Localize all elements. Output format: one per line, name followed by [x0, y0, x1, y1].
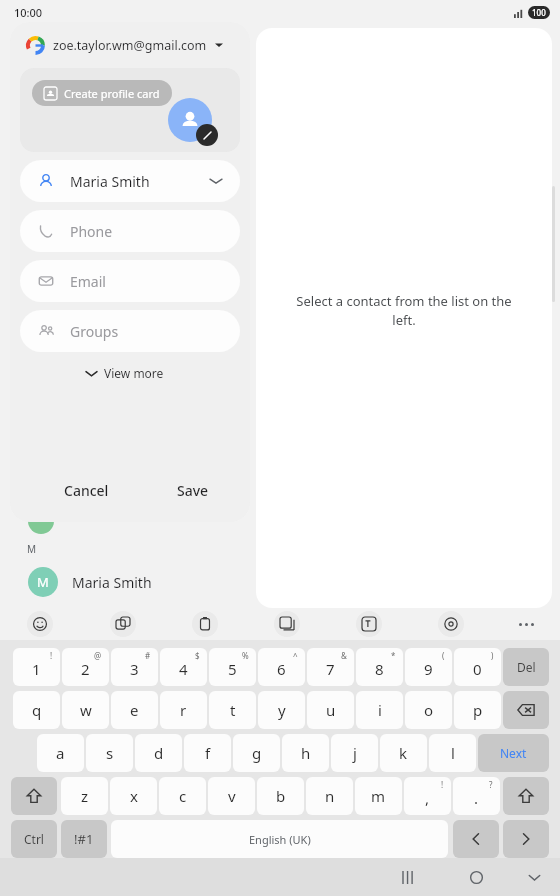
staticText: ,	[425, 788, 430, 808]
staticText: !	[50, 650, 53, 661]
button[interactable]: Handwriting	[356, 611, 382, 637]
staticText: *	[391, 650, 396, 661]
staticText: t	[230, 700, 236, 720]
button[interactable]: d	[135, 734, 182, 772]
button[interactable]: Groups	[20, 310, 240, 352]
button[interactable]: m	[355, 777, 402, 815]
staticText: 10:00	[14, 5, 43, 20]
button[interactable]: y	[258, 691, 305, 729]
staticText: $	[195, 650, 200, 661]
button[interactable]: 4	[160, 648, 207, 686]
button[interactable]: Next	[478, 734, 549, 772]
staticText: n	[325, 786, 335, 806]
button[interactable]: b	[257, 777, 304, 815]
button[interactable]: Phone	[20, 210, 240, 252]
button[interactable]: Shift	[11, 777, 57, 815]
button[interactable]: Translate	[110, 611, 136, 637]
staticText: Email	[70, 272, 106, 291]
staticText: f	[205, 743, 211, 763]
button[interactable]: View more	[80, 358, 170, 388]
button[interactable]: s	[86, 734, 133, 772]
button[interactable]: 5	[209, 648, 256, 686]
staticText: u	[326, 700, 336, 720]
button[interactable]: Hide keyboard	[524, 867, 544, 887]
staticText: Ctrl	[24, 831, 44, 847]
button[interactable]: p	[454, 691, 501, 729]
staticText: M	[37, 573, 49, 591]
button[interactable]: j	[331, 734, 378, 772]
button[interactable]: English (UK)	[111, 820, 448, 858]
button[interactable]: r	[160, 691, 207, 729]
button[interactable]: f	[184, 734, 231, 772]
button[interactable]: Shift	[503, 777, 549, 815]
staticText: &	[341, 650, 347, 661]
button[interactable]: t	[209, 691, 256, 729]
button[interactable]: 3	[111, 648, 158, 686]
button[interactable]: 2	[62, 648, 109, 686]
button[interactable]: n	[306, 777, 353, 815]
staticText: !	[441, 779, 444, 790]
button[interactable]: a	[37, 734, 84, 772]
button[interactable]: Save	[165, 470, 221, 510]
staticText: z	[81, 786, 89, 806]
button[interactable]: Ctrl	[11, 820, 57, 858]
button[interactable]: Backspace	[503, 691, 549, 729]
button[interactable]: i	[356, 691, 403, 729]
button[interactable]: Email	[20, 260, 240, 302]
button[interactable]: Cancel	[52, 470, 121, 510]
button[interactable]: q	[13, 691, 60, 729]
button[interactable]: l	[429, 734, 476, 772]
staticText: 8	[375, 659, 384, 679]
button[interactable]: Settings	[438, 611, 464, 637]
staticText: c	[179, 786, 187, 806]
button[interactable]: Create profile card	[32, 80, 172, 106]
staticText: #	[145, 650, 151, 661]
staticText: Create profile card	[64, 86, 160, 101]
button[interactable]: M	[20, 564, 250, 600]
button[interactable]: 9	[405, 648, 452, 686]
button[interactable]: 8	[356, 648, 403, 686]
staticText: zoe.taylor.wm@gmail.com	[53, 37, 207, 54]
button[interactable]: Maria Smith	[20, 160, 240, 202]
button[interactable]: Emoji	[27, 611, 53, 637]
button[interactable]: .	[453, 777, 500, 815]
button[interactable]: Next	[503, 820, 549, 858]
button[interactable]: 6	[258, 648, 305, 686]
button[interactable]: Stickers	[274, 611, 300, 637]
staticText: )	[491, 650, 494, 661]
staticText: View more	[104, 365, 164, 381]
button[interactable]: More	[513, 611, 539, 637]
button[interactable]: Home	[466, 867, 486, 887]
staticText: m	[371, 786, 386, 806]
button[interactable]: Del	[503, 648, 549, 686]
button[interactable]: 0	[454, 648, 501, 686]
button[interactable]: e	[111, 691, 158, 729]
button[interactable]: 7	[307, 648, 354, 686]
button[interactable]: x	[110, 777, 157, 815]
button[interactable]: ,	[404, 777, 451, 815]
button[interactable]: zoe.taylor.wm@gmail.com	[10, 22, 250, 68]
staticText: M	[27, 542, 37, 556]
staticText: y	[278, 700, 286, 720]
button[interactable]: c	[159, 777, 206, 815]
staticText: Save	[177, 481, 209, 500]
button[interactable]: v	[208, 777, 255, 815]
staticText: 6	[277, 659, 286, 679]
button[interactable]: u	[307, 691, 354, 729]
button[interactable]: Edit photo	[196, 124, 218, 146]
button[interactable]: Recents	[398, 867, 418, 887]
button[interactable]: k	[380, 734, 427, 772]
staticText: !#1	[74, 830, 94, 848]
staticText: g	[252, 743, 262, 763]
button[interactable]: Previous	[453, 820, 499, 858]
button[interactable]: w	[62, 691, 109, 729]
button[interactable]: Clipboard	[192, 611, 218, 637]
button[interactable]: z	[61, 777, 108, 815]
button[interactable]: h	[282, 734, 329, 772]
button[interactable]: 1	[13, 648, 60, 686]
button[interactable]: o	[405, 691, 452, 729]
button[interactable]: !#1	[61, 820, 107, 858]
staticText: English (UK)	[249, 832, 311, 847]
button[interactable]: g	[233, 734, 280, 772]
